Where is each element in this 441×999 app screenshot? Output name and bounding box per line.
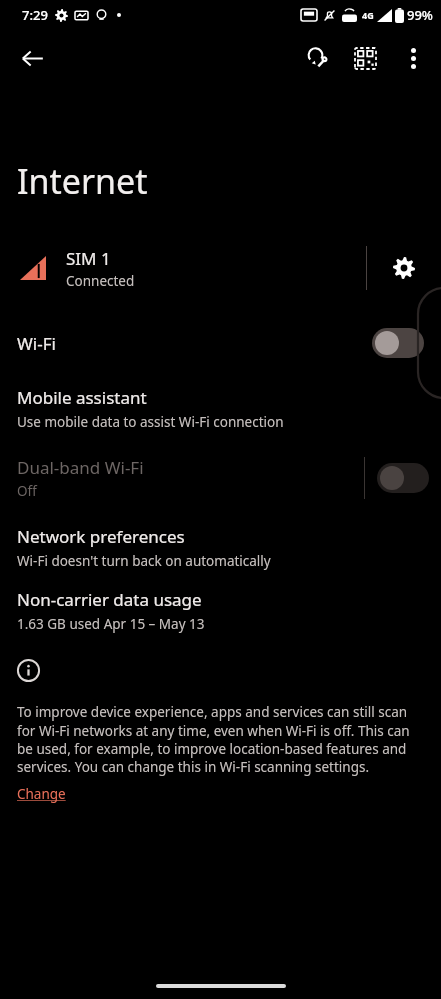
staticText: Wi-Fi doesn't turn back on automatically xyxy=(17,552,271,570)
staticText: Change xyxy=(17,785,66,803)
staticText: Dual-band Wi-Fi xyxy=(17,456,144,479)
button[interactable]: Network preferences xyxy=(0,521,441,574)
button[interactable]: Change xyxy=(17,785,66,803)
staticText: 1.63 GB used Apr 15 – May 13 xyxy=(17,615,205,633)
staticText: Off xyxy=(17,482,37,500)
button[interactable]: SIM 1 xyxy=(0,234,441,302)
button[interactable]: More options xyxy=(389,34,437,82)
staticText: Network preferences xyxy=(17,525,185,548)
staticText: Mobile assistant xyxy=(17,386,147,409)
staticText: Non-carrier data usage xyxy=(17,588,202,611)
button[interactable]: Mobile assistant xyxy=(0,382,441,435)
button[interactable]: Back xyxy=(8,34,56,82)
staticText: 7:29 xyxy=(22,6,48,24)
staticText: Internet xyxy=(17,158,148,204)
staticText: Connected xyxy=(66,272,135,290)
button[interactable]: Non-carrier data usage xyxy=(0,584,441,637)
button[interactable]: Toggle xyxy=(372,328,424,358)
staticText: To improve device experience, apps and s… xyxy=(17,703,421,775)
staticText: Use mobile data to assist Wi-Fi connecti… xyxy=(17,413,284,431)
button[interactable]: Scan QR code xyxy=(341,34,389,82)
staticText: Wi-Fi xyxy=(17,332,372,355)
button[interactable]: Fix connection xyxy=(293,34,341,82)
button[interactable]: Toggle xyxy=(377,463,429,493)
staticText: 99% xyxy=(407,6,433,24)
staticText: SIM 1 xyxy=(66,247,111,270)
button[interactable]: Wi-Fi xyxy=(0,316,441,370)
staticText: 4G xyxy=(362,9,374,21)
button[interactable]: SIM settings xyxy=(367,234,441,302)
